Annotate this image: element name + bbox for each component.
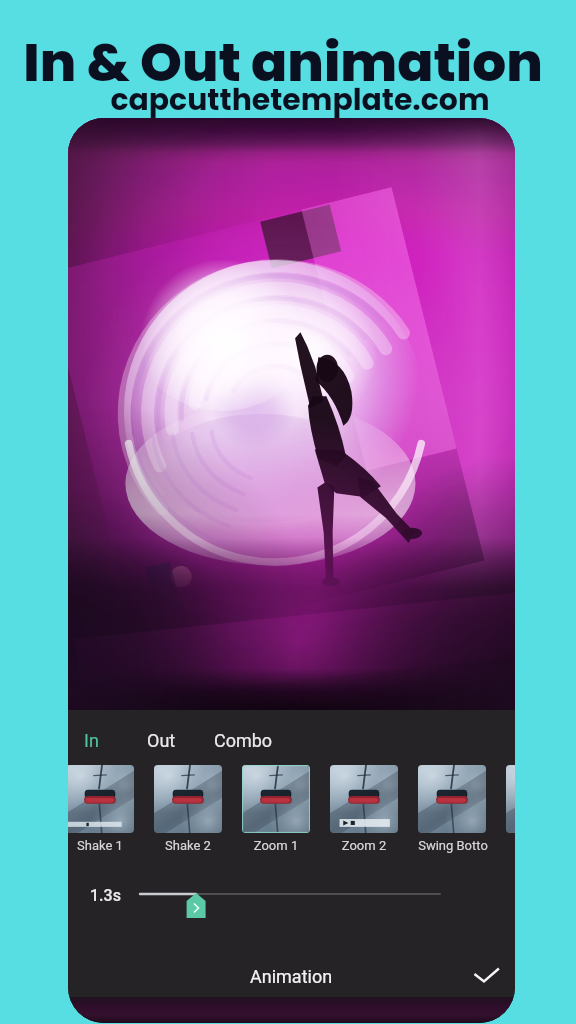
staticText: In [84,730,99,751]
staticText: Zoom 2 [330,838,398,853]
button[interactable]: Confirm [469,959,503,993]
button[interactable]: Sw [506,765,515,861]
staticText: Combo [214,730,273,751]
button[interactable]: Shake 1 [68,765,134,861]
button[interactable]: In [76,724,107,757]
staticText: Swing Botto [418,838,486,853]
button[interactable]: Swing Botto [418,765,486,861]
staticText: Shake 1 [68,838,134,853]
staticText: Zoom 1 [242,838,310,853]
staticText: 1.3s [90,886,121,905]
button[interactable]: Zoom 1 [242,765,310,861]
button[interactable]: 1.3s [68,878,515,918]
button[interactable]: Out [139,724,184,757]
staticText: Animation [250,966,333,987]
staticText: In & Out animation [0,25,571,100]
staticText: Shake 2 [154,838,222,853]
staticText: capcutthetemplate.com [12,79,576,121]
staticText: Out [147,730,176,751]
button[interactable]: Combo [206,724,281,757]
button[interactable]: Shake 2 [154,765,222,861]
button[interactable]: Zoom 2 [330,765,398,861]
